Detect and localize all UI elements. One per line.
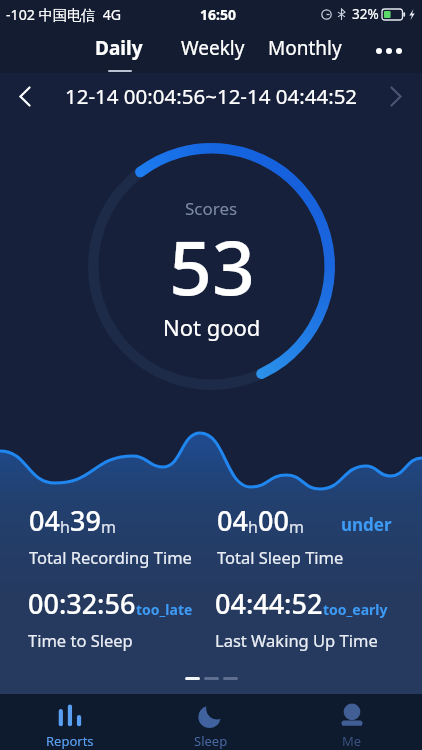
staticText: Weekly <box>181 35 245 61</box>
staticText: 04:44:52 <box>215 585 323 622</box>
staticText: Reports <box>46 732 94 750</box>
staticText: Monthly <box>268 35 342 61</box>
staticText: Daily <box>95 35 143 61</box>
staticText: 12-14 00:04:56~12-14 04:44:52 <box>65 82 358 110</box>
button[interactable]: Previous <box>2 73 48 119</box>
staticText: m <box>101 516 116 538</box>
button[interactable]: Weekly <box>181 35 245 61</box>
staticText: too_early <box>323 600 388 619</box>
staticText: h <box>248 516 258 538</box>
button[interactable]: Next <box>373 73 419 119</box>
staticText: Total Recording Time <box>29 546 192 568</box>
staticText: m <box>289 516 304 538</box>
button[interactable]: Reports <box>0 694 140 750</box>
staticText: 53 <box>169 215 255 317</box>
staticText: 32% <box>352 5 379 23</box>
staticText: Sleep <box>194 732 228 750</box>
staticText: Last Waking Up Time <box>215 629 378 651</box>
staticText: h <box>60 516 70 538</box>
staticText: too_late <box>136 600 193 619</box>
staticText: 39 <box>70 502 101 539</box>
button[interactable]: Sleep <box>140 694 281 750</box>
staticText: 04 <box>29 502 60 539</box>
staticText: Scores <box>185 197 238 220</box>
staticText: 00:32:56 <box>28 585 136 622</box>
button[interactable]: Me <box>281 694 422 750</box>
staticText: under <box>341 513 392 536</box>
button[interactable]: Daily <box>95 35 143 61</box>
staticText: 00 <box>258 502 289 539</box>
button[interactable]: Monthly <box>268 35 342 61</box>
staticText: Time to Sleep <box>28 629 133 651</box>
staticText: 04 <box>217 502 248 539</box>
staticText: -102 中国电信 4G <box>6 5 122 24</box>
button[interactable]: More options <box>367 29 411 73</box>
staticText: Me <box>342 732 362 750</box>
staticText: 16:50 <box>200 5 236 24</box>
staticText: Not good <box>163 312 261 342</box>
staticText: Total Sleep Time <box>217 546 344 568</box>
